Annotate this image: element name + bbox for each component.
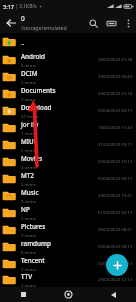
button[interactable]: Add bbox=[106, 254, 128, 276]
staticText: 2 items bbox=[21, 79, 36, 85]
staticText: 3 items bbox=[21, 215, 36, 221]
staticText: Movies bbox=[21, 154, 43, 163]
staticText: TTV bbox=[21, 272, 33, 281]
staticText: 29/03/2023 19:21 bbox=[98, 193, 133, 199]
staticText: Music bbox=[21, 188, 39, 197]
staticText: Tencent bbox=[21, 256, 45, 265]
button[interactable]: Download bbox=[0, 102, 136, 119]
staticText: MT2 bbox=[21, 171, 34, 180]
staticText: 03/04/2023 09:11 bbox=[98, 176, 133, 182]
staticText: MIUI bbox=[21, 137, 36, 146]
staticText: 3:17 bbox=[3, 3, 14, 10]
button[interactable]: Jor ity bbox=[0, 119, 136, 136]
button[interactable]: .. bbox=[0, 33, 136, 51]
button[interactable]: Documents bbox=[0, 85, 136, 102]
staticText: 3 items bbox=[21, 232, 36, 238]
staticText: 3 items bbox=[21, 181, 36, 187]
button[interactable]: More options bbox=[120, 15, 136, 31]
staticText: 29/03/2023 09:43 bbox=[98, 74, 133, 80]
staticText: 29/03/2023 12:13 bbox=[98, 277, 133, 283]
staticText: Android bbox=[21, 52, 45, 61]
staticText: 5 items bbox=[21, 147, 36, 153]
button[interactable]: ramdump bbox=[0, 238, 136, 255]
staticText: 18/03/2023 11:43 bbox=[98, 125, 133, 131]
button[interactable]: View mode bbox=[102, 14, 120, 32]
staticText: 03/04/2023 02:11 bbox=[98, 108, 133, 114]
staticText: 01/03/2023 20:13 bbox=[98, 210, 133, 216]
staticText: 03/04/2023 16:13 bbox=[98, 159, 133, 165]
staticText: 0 items bbox=[21, 249, 36, 255]
staticText: | 3,1KB/s bbox=[15, 3, 37, 10]
staticText: 3 items bbox=[21, 198, 36, 204]
staticText: 5 items bbox=[21, 62, 36, 68]
staticText: 03/04/2023 00:13 bbox=[98, 261, 133, 267]
staticText: 37 items bbox=[21, 113, 39, 119]
button[interactable]: Pictures bbox=[0, 221, 136, 238]
button[interactable]: Home bbox=[46, 287, 91, 302]
button[interactable]: Search bbox=[84, 14, 102, 32]
staticText: 3 items bbox=[21, 266, 36, 272]
staticText: 26/03/2023 08:21 bbox=[98, 227, 133, 233]
button[interactable]: Movies bbox=[0, 153, 136, 170]
staticText: 3 items bbox=[21, 282, 36, 287]
staticText: Jor ity bbox=[21, 120, 39, 129]
button[interactable]: Music bbox=[0, 187, 136, 204]
staticText: DCIM bbox=[21, 69, 38, 78]
staticText: NP bbox=[21, 205, 30, 214]
staticText: 28/03/2023 21:38 bbox=[98, 57, 133, 63]
staticText: Pictures bbox=[21, 222, 46, 231]
staticText: 0 bbox=[21, 14, 25, 23]
staticText: 3 items bbox=[21, 96, 36, 102]
staticText: Download bbox=[21, 103, 52, 112]
staticText: 1 item bbox=[21, 130, 34, 136]
staticText: 03/04/2023 00:13 bbox=[98, 244, 133, 250]
staticText: /storage/emulated bbox=[21, 24, 67, 31]
button[interactable]: TTV bbox=[0, 272, 136, 287]
button[interactable]: DCIM bbox=[0, 68, 136, 85]
button[interactable]: Back bbox=[0, 12, 21, 33]
button[interactable]: NP bbox=[0, 204, 136, 221]
staticText: .. bbox=[21, 38, 25, 47]
button[interactable]: Tencent bbox=[0, 255, 136, 272]
staticText: ramdump bbox=[21, 239, 51, 248]
staticText: 31/03/2023 09:11 bbox=[98, 142, 133, 148]
button[interactable]: MT2 bbox=[0, 170, 136, 187]
button[interactable]: Recents bbox=[0, 287, 46, 302]
staticText: 3 items bbox=[21, 164, 36, 170]
button[interactable]: MIUI bbox=[0, 136, 136, 153]
staticText: Documents bbox=[21, 86, 56, 95]
staticText: 04/03/2023 21:10 bbox=[98, 91, 133, 97]
button[interactable]: Android bbox=[0, 51, 136, 68]
button[interactable]: Back bbox=[91, 287, 136, 302]
